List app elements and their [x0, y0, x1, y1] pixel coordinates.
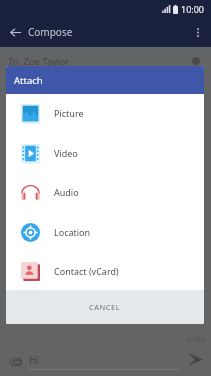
button[interactable]: Attach file	[8, 355, 23, 369]
button[interactable]: Back	[5, 22, 26, 42]
staticText: CANCEL	[89, 302, 121, 312]
staticText: Hi	[29, 353, 39, 367]
button[interactable]: Video	[6, 133, 204, 173]
button[interactable]: Audio	[6, 172, 204, 212]
staticText: Audio	[54, 186, 79, 198]
button[interactable]: Contact (vCard)	[6, 251, 204, 291]
button[interactable]: More options	[189, 23, 207, 41]
staticText: Contact (vCard)	[54, 265, 119, 277]
staticText: Attach	[14, 74, 43, 87]
staticText: 10:00	[181, 3, 205, 15]
staticText: Video	[54, 147, 78, 159]
button[interactable]: CANCEL	[6, 290, 204, 324]
staticText: Picture	[54, 107, 84, 119]
button[interactable]: Send	[185, 351, 205, 367]
staticText: Location	[54, 226, 91, 238]
staticText: 2/160	[186, 335, 205, 345]
staticText: Compose	[28, 25, 73, 39]
button[interactable]: Location	[6, 212, 204, 252]
staticText: To: Zoe Taylor	[8, 55, 70, 68]
button[interactable]: Picture	[6, 93, 204, 133]
